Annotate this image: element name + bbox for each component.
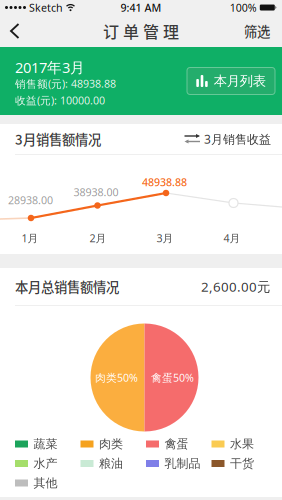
staticText: 乳制品 (164, 456, 200, 471)
staticText: 粮油 (99, 456, 123, 471)
staticText: 100% (230, 0, 257, 15)
staticText: 2,600.00元 (201, 278, 270, 295)
button[interactable]: Back (0, 15, 28, 47)
staticText: 筛选 (244, 21, 270, 41)
staticText: 收益(元): 10000.00 (15, 93, 105, 107)
staticText: 9:41 AM (120, 0, 161, 15)
staticText: 3月 (156, 231, 173, 245)
staticText: 销售额(元): 48938.88 (15, 77, 116, 91)
staticText: Sketch (29, 0, 63, 15)
staticText: 1月 (21, 231, 38, 245)
button[interactable]: 3月销售收益 (184, 124, 271, 154)
staticText: 本月列表 (214, 73, 266, 89)
staticText: 4月 (223, 231, 240, 245)
button[interactable]: 本月列表 (187, 67, 275, 94)
staticText: 2月 (89, 231, 106, 245)
staticText: 28938.00 (8, 193, 53, 207)
staticText: 订 单 管 理 (103, 19, 179, 43)
button[interactable]: 筛选 (244, 15, 282, 47)
staticText: 其他 (33, 476, 57, 490)
staticText: 水果 (230, 437, 254, 451)
staticText: 肉类50% (95, 370, 138, 385)
staticText: 肉类 (99, 437, 123, 451)
staticText: 禽蛋50% (151, 370, 194, 385)
staticText: 干货 (230, 456, 254, 471)
staticText: 禽蛋 (164, 437, 188, 451)
staticText: 蔬菜 (33, 437, 57, 451)
staticText: 3月销售收益 (204, 131, 271, 147)
staticText: 水产 (33, 456, 57, 471)
staticText: 2017年3月 (15, 58, 85, 77)
staticText: 3月销售额情况 (15, 129, 101, 149)
staticText: 本月总销售额情况 (15, 277, 119, 296)
staticText: 48938.88 (142, 175, 187, 189)
staticText: 38938.00 (73, 185, 118, 199)
